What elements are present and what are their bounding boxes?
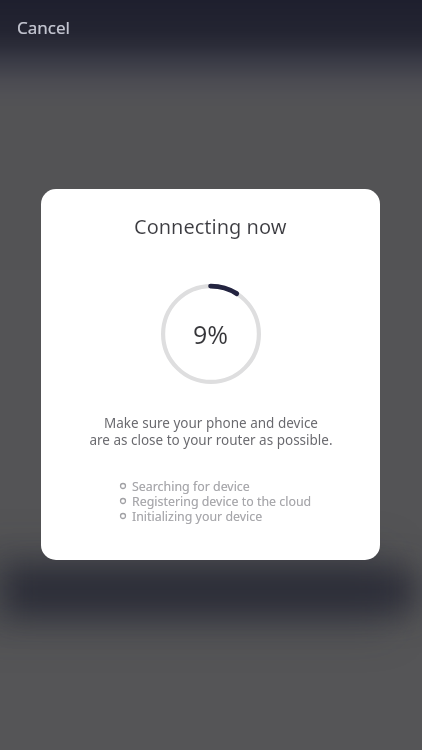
other: Pending step	[119, 497, 127, 505]
button[interactable]: Pending step	[119, 507, 263, 525]
staticText: Make sure your phone and device are as c…	[89, 414, 333, 449]
staticText: Searching for device	[132, 478, 250, 495]
staticText: Initializing your device	[132, 508, 263, 525]
staticText: Registering device to the cloud	[132, 493, 312, 510]
staticText: Cancel	[17, 16, 70, 39]
staticText: 9%	[193, 317, 229, 351]
staticText: Connecting now	[134, 213, 287, 240]
button[interactable]: Cancel	[8, 10, 79, 45]
other: Pending step	[119, 512, 127, 520]
button[interactable]: Pending step	[119, 492, 312, 510]
button[interactable]: Pending step	[119, 477, 250, 495]
other: Pending step	[119, 482, 127, 490]
